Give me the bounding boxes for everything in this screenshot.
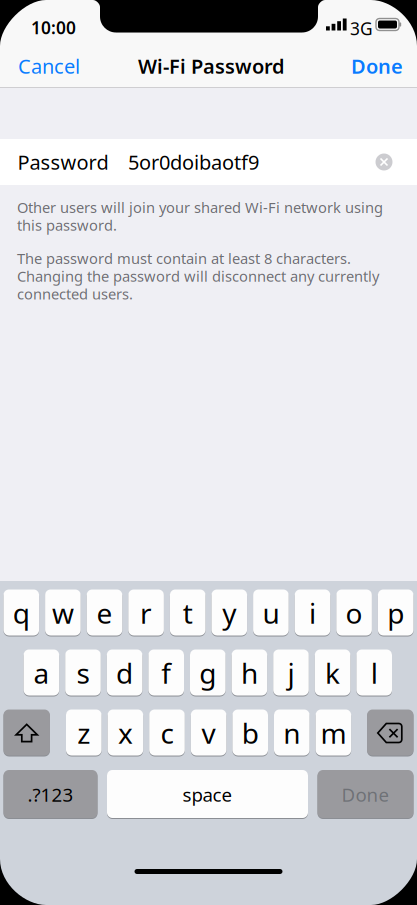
staticText: 10:00 xyxy=(31,16,76,39)
staticText: h xyxy=(241,654,258,692)
staticText: Other users will join your shared Wi-Fi … xyxy=(17,197,383,217)
button[interactable]: i xyxy=(295,589,330,636)
button[interactable]: m xyxy=(316,709,351,756)
staticText: x xyxy=(118,714,133,752)
staticText: o xyxy=(346,594,363,632)
button[interactable]: Shift xyxy=(3,709,50,756)
button[interactable]: space xyxy=(107,770,308,819)
button[interactable]: g xyxy=(190,649,226,696)
staticText: Cancel xyxy=(18,53,80,79)
staticText: The password must contain at least 8 cha… xyxy=(17,248,351,268)
staticText: 3G xyxy=(350,17,373,40)
staticText: d xyxy=(116,654,133,692)
staticText: s xyxy=(76,654,89,692)
staticText: l xyxy=(371,654,378,692)
staticText: y xyxy=(222,594,236,632)
staticText: j xyxy=(287,654,294,692)
button[interactable]: e xyxy=(87,589,122,636)
button[interactable]: r xyxy=(128,589,164,636)
staticText: p xyxy=(387,594,404,632)
staticText: q xyxy=(13,594,30,632)
button[interactable]: l xyxy=(356,649,392,696)
staticText: f xyxy=(161,654,171,692)
staticText: r xyxy=(140,594,152,632)
staticText: t xyxy=(183,594,193,632)
staticText: v xyxy=(202,714,216,752)
button[interactable]: Done xyxy=(333,44,403,88)
staticText: Done xyxy=(351,53,403,79)
button[interactable]: c xyxy=(149,709,185,756)
staticText: 5or0doibaotf9 xyxy=(128,149,259,175)
staticText: Password xyxy=(17,149,108,175)
button[interactable]: q xyxy=(3,589,39,636)
button[interactable]: s xyxy=(65,649,101,696)
staticText: z xyxy=(77,714,90,752)
button[interactable]: p xyxy=(378,589,413,636)
button[interactable]: f xyxy=(148,649,184,696)
button[interactable]: a xyxy=(24,649,59,696)
staticText: .?123 xyxy=(27,782,73,807)
staticText: Wi-Fi Password xyxy=(138,53,285,79)
button[interactable]: x xyxy=(108,709,143,756)
staticText: b xyxy=(242,714,259,752)
button[interactable]: j xyxy=(273,649,309,696)
button[interactable]: n xyxy=(274,709,310,756)
button[interactable]: u xyxy=(253,589,289,636)
staticText: this password. xyxy=(17,215,117,235)
button[interactable]: y xyxy=(211,589,247,636)
staticText: e xyxy=(96,594,112,632)
staticText: a xyxy=(33,654,49,692)
staticText: space xyxy=(182,782,232,807)
button[interactable]: t xyxy=(170,589,205,636)
staticText: i xyxy=(309,594,316,632)
staticText: w xyxy=(52,594,74,632)
staticText: k xyxy=(325,654,340,692)
button[interactable]: k xyxy=(315,649,350,696)
button[interactable]: .?123 xyxy=(3,770,97,819)
button[interactable]: w xyxy=(45,589,81,636)
button[interactable]: Done xyxy=(317,770,413,819)
staticText: c xyxy=(160,714,173,752)
staticText: connected users. xyxy=(17,284,133,303)
staticText: Done xyxy=(341,782,389,807)
button[interactable]: Clear text xyxy=(367,145,401,179)
staticText: Changing the password will disconnect an… xyxy=(17,266,379,286)
button[interactable]: h xyxy=(232,649,267,696)
button[interactable]: b xyxy=(232,709,268,756)
button[interactable]: Delete xyxy=(367,709,413,756)
button[interactable]: z xyxy=(66,709,102,756)
staticText: n xyxy=(283,714,300,752)
staticText: g xyxy=(199,654,216,692)
button[interactable]: o xyxy=(336,589,372,636)
button[interactable]: v xyxy=(191,709,226,756)
button[interactable]: d xyxy=(107,649,142,696)
staticText: m xyxy=(320,714,346,752)
button[interactable]: Cancel xyxy=(18,44,98,88)
staticText: u xyxy=(262,594,279,632)
